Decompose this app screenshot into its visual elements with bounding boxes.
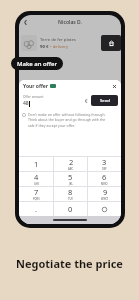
button[interactable]: .: [19, 202, 53, 216]
staticText: Offer amount: [23, 95, 44, 99]
button[interactable]: 2: [54, 157, 87, 171]
staticText: DEF: [102, 167, 107, 171]
staticText: 8: [68, 187, 73, 197]
staticText: Don't make an offer without following th…: [28, 112, 112, 128]
staticText: JKL: [69, 182, 73, 186]
staticText: 0: [68, 204, 73, 214]
button[interactable]: Make an offer: [11, 57, 63, 70]
button[interactable]: 5: [54, 172, 87, 186]
staticText: GHI: [34, 182, 39, 186]
staticText: 4: [34, 172, 39, 182]
staticText: 5: [68, 172, 73, 182]
staticText: 48: [23, 100, 29, 107]
staticText: €: [85, 98, 88, 104]
staticText: 90 €: [40, 44, 49, 50]
button[interactable]: 7: [19, 187, 53, 201]
staticText: TUV: [68, 197, 73, 201]
staticText: MNO: [101, 182, 108, 186]
staticText: 9: [103, 187, 108, 197]
button[interactable]: 3: [88, 157, 121, 171]
staticText: 7: [34, 187, 39, 197]
staticText: Nicolas D.: [58, 19, 82, 26]
button[interactable]: 0: [54, 202, 87, 216]
staticText: 6: [102, 172, 107, 182]
button[interactable]: 9: [88, 187, 121, 201]
button[interactable]: Back: [21, 18, 30, 27]
staticText: • delivery: [49, 44, 69, 50]
staticText: Terre de fer plates: [40, 37, 76, 43]
button[interactable]: Close: [111, 83, 118, 90]
staticText: 2: [69, 157, 74, 167]
button[interactable]: [88, 202, 121, 216]
button[interactable]: 4: [19, 172, 53, 186]
button[interactable]: 1: [19, 157, 53, 171]
staticText: Make an offer: [17, 60, 57, 68]
staticText: PQRS: [33, 197, 40, 201]
staticText: Send: [100, 98, 110, 104]
staticText: ABC: [68, 167, 74, 171]
button[interactable]: Shipping: [101, 35, 121, 51]
staticText: .: [35, 204, 38, 214]
staticText: Your offer: [23, 83, 48, 90]
staticText: Negotiate the price: [16, 256, 123, 271]
button[interactable]: 8: [54, 187, 87, 201]
button[interactable]: 6: [88, 172, 121, 186]
staticText: WXYZ: [101, 197, 109, 201]
button[interactable]: Send: [91, 95, 118, 106]
staticText: 1: [34, 159, 39, 169]
staticText: 3: [102, 157, 107, 167]
